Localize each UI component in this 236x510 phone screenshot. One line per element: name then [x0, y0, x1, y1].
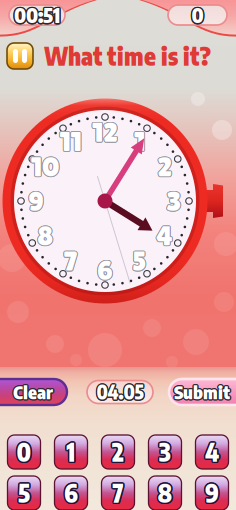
- button[interactable]: Pause: [7, 43, 33, 69]
- staticText: 1: [133, 125, 144, 157]
- staticText: 12: [93, 116, 119, 148]
- staticText: 5: [17, 479, 29, 509]
- staticText: Submit: [173, 380, 229, 403]
- staticText: 00:51: [14, 4, 60, 29]
- button[interactable]: 8: [148, 476, 181, 510]
- staticText: 0: [18, 436, 33, 466]
- staticText: 3: [167, 185, 182, 217]
- staticText: 3: [166, 184, 181, 216]
- button[interactable]: 2: [101, 435, 134, 469]
- staticText: 6: [63, 479, 77, 509]
- button[interactable]: 4: [195, 435, 228, 469]
- staticText: 12: [92, 116, 118, 148]
- staticText: 12: [91, 115, 117, 147]
- staticText: 12: [91, 117, 117, 149]
- staticText: 3: [166, 185, 181, 217]
- staticText: 7: [64, 244, 78, 276]
- button[interactable]: 9: [195, 476, 228, 510]
- staticText: 4: [157, 219, 174, 251]
- staticText: 7: [112, 477, 123, 507]
- staticText: 9: [28, 184, 44, 216]
- staticText: 0: [15, 436, 30, 466]
- button[interactable]: 1: [54, 435, 87, 469]
- staticText: 3: [166, 185, 181, 217]
- staticText: 2: [156, 151, 171, 183]
- staticText: Submit: [173, 382, 229, 404]
- staticText: 3: [160, 438, 172, 468]
- staticText: 10: [31, 151, 60, 183]
- staticText: 6: [96, 254, 112, 286]
- staticText: 9: [29, 184, 45, 216]
- staticText: 7: [63, 245, 77, 277]
- staticText: Submit: [175, 380, 231, 403]
- staticText: 6: [98, 253, 114, 285]
- button[interactable]: 6: [54, 476, 87, 510]
- staticText: 7: [113, 477, 124, 507]
- staticText: 0: [15, 437, 30, 467]
- button[interactable]: Clear: [0, 379, 67, 405]
- staticText: 1: [66, 438, 75, 468]
- staticText: 04.05: [95, 380, 142, 403]
- button[interactable]: Submit: [169, 379, 236, 405]
- staticText: 12: [91, 116, 117, 148]
- staticText: 8: [157, 478, 172, 508]
- staticText: Submit: [175, 381, 231, 403]
- staticText: 04.05: [96, 382, 143, 405]
- staticText: 2: [158, 151, 173, 183]
- staticText: 2: [112, 436, 124, 466]
- staticText: 5: [19, 477, 31, 507]
- staticText: 1: [65, 438, 74, 468]
- staticText: 4: [205, 437, 219, 467]
- staticText: 00:51: [13, 2, 59, 27]
- staticText: 2: [157, 150, 172, 182]
- staticText: 3: [167, 185, 182, 217]
- staticText: 9: [28, 184, 44, 216]
- staticText: 5: [132, 244, 147, 276]
- staticText: 04.05: [98, 380, 145, 403]
- button[interactable]: 5: [7, 476, 40, 510]
- staticText: 4: [157, 220, 174, 252]
- staticText: 7: [64, 245, 78, 277]
- staticText: Submit: [175, 380, 231, 402]
- staticText: 8: [156, 478, 171, 508]
- button[interactable]: 7: [101, 476, 134, 510]
- staticText: 6: [63, 479, 77, 509]
- staticText: 9: [204, 477, 218, 507]
- staticText: 0: [191, 1, 203, 26]
- staticText: 11: [60, 126, 82, 158]
- staticText: 0: [16, 437, 31, 467]
- staticText: 12: [92, 117, 118, 149]
- staticText: 2: [158, 151, 173, 183]
- staticText: 9: [28, 186, 44, 218]
- staticText: 0: [191, 4, 203, 29]
- staticText: 1: [135, 125, 146, 157]
- staticText: 1: [67, 438, 76, 468]
- staticText: 1: [66, 436, 75, 466]
- staticText: 4: [204, 437, 218, 467]
- staticText: 5: [131, 245, 146, 277]
- button[interactable]: 3: [148, 435, 181, 469]
- staticText: 5: [19, 478, 31, 508]
- staticText: 11: [60, 125, 82, 157]
- staticText: 04.05: [96, 379, 143, 402]
- staticText: 4: [206, 438, 220, 468]
- staticText: 0: [16, 438, 31, 468]
- staticText: 9: [205, 477, 219, 507]
- staticText: 11: [59, 126, 81, 158]
- staticText: 9: [29, 185, 45, 217]
- staticText: 00:51: [15, 1, 61, 26]
- staticText: 8: [36, 219, 52, 251]
- button[interactable]: 0: [7, 435, 40, 469]
- staticText: 5: [131, 244, 146, 276]
- staticText: 9: [28, 186, 44, 218]
- staticText: 2: [113, 436, 125, 466]
- staticText: 6: [97, 255, 113, 287]
- staticText: 6: [96, 253, 112, 285]
- staticText: 2: [157, 151, 172, 183]
- staticText: 8: [157, 477, 172, 507]
- staticText: 7: [63, 245, 77, 277]
- staticText: 6: [65, 477, 79, 507]
- staticText: 04.05: [98, 380, 145, 404]
- staticText: 0: [192, 1, 204, 26]
- staticText: Clear: [13, 380, 53, 402]
